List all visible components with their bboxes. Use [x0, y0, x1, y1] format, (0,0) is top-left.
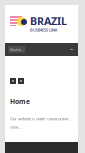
staticText: Our website is under construction. Comin…: [10, 116, 73, 121]
button[interactable]: Go to...: [0, 0, 17, 7]
staticText: Home: [10, 97, 30, 106]
staticText: soon...: [10, 124, 21, 130]
button[interactable]: Previous page: [10, 78, 16, 84]
button[interactable]: Next page: [18, 78, 24, 84]
button[interactable]: Menu: [0, 0, 8, 9]
staticText: BRAZIL: [30, 14, 67, 28]
staticText: Go to...: [10, 47, 23, 52]
staticText: BUSINESS LINK: [30, 27, 58, 32]
